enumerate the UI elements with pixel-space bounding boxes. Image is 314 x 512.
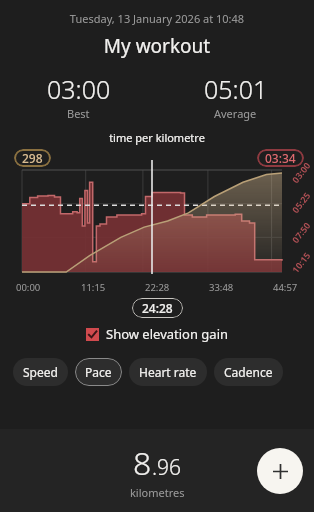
staticText: .96 [152,453,182,482]
button[interactable]: 03:34 [257,149,304,167]
staticText: 10:15 [289,249,313,275]
staticText: Speed [23,364,58,380]
button[interactable]: Show elevation gain [0,325,314,343]
staticText: 24:28 [142,300,173,316]
staticText: 05:01 [204,72,268,106]
staticText: Pace [85,364,112,380]
staticText: 00:00 [16,281,41,294]
staticText: 05:25 [289,189,313,215]
button[interactable]: 24:28 [132,298,183,318]
staticText: Tuesday, 13 January 2026 at 10:48 [0,11,314,26]
staticText: time per kilometre [0,130,314,145]
button[interactable]: Add workout [257,448,303,494]
staticText: Show elevation gain [106,325,229,343]
staticText: 8 [133,441,152,485]
staticText: 298 [22,150,43,166]
staticText: Cadence [224,364,273,380]
button[interactable]: Pace [75,358,122,386]
button[interactable]: 05:01 [157,72,314,121]
staticText: 03:00 [47,72,111,106]
staticText: 07:50 [289,219,313,245]
staticText: 33:48 [209,281,234,294]
button[interactable]: 03:00 [0,72,157,121]
button[interactable]: Speed [13,358,68,386]
button[interactable]: 298 [14,149,51,167]
staticText: 44:57 [273,281,298,294]
staticText: 11:15 [81,281,106,294]
staticText: Average [214,106,257,121]
staticText: kilometres [130,485,185,500]
staticText: 22:28 [145,281,170,294]
staticText: Heart rate [139,364,197,380]
staticText: 03:00 [289,159,313,185]
staticText: My workout [0,33,314,59]
staticText: 03:34 [265,150,296,166]
button[interactable]: Heart rate [129,358,207,386]
staticText: Best [67,106,90,121]
button[interactable]: Cadence [214,358,283,386]
